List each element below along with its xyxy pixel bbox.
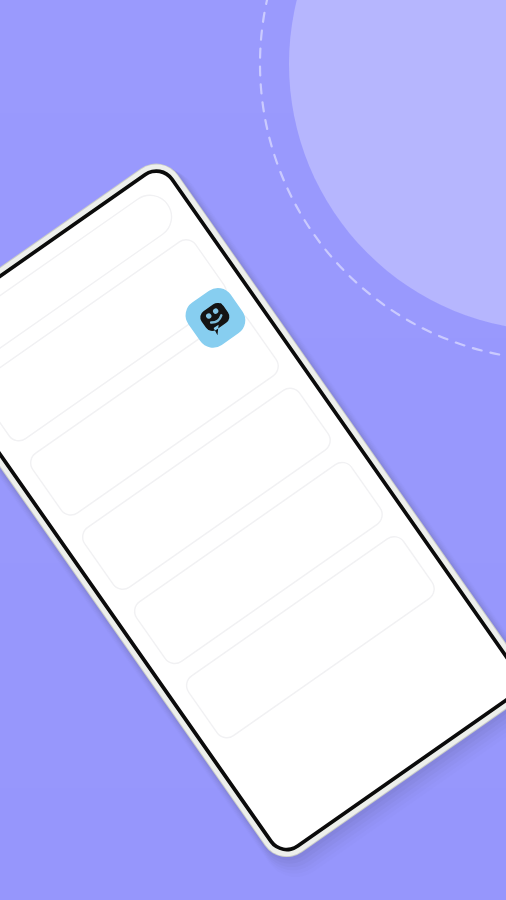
- button[interactable]: App promotional artwork: [0, 0, 506, 900]
